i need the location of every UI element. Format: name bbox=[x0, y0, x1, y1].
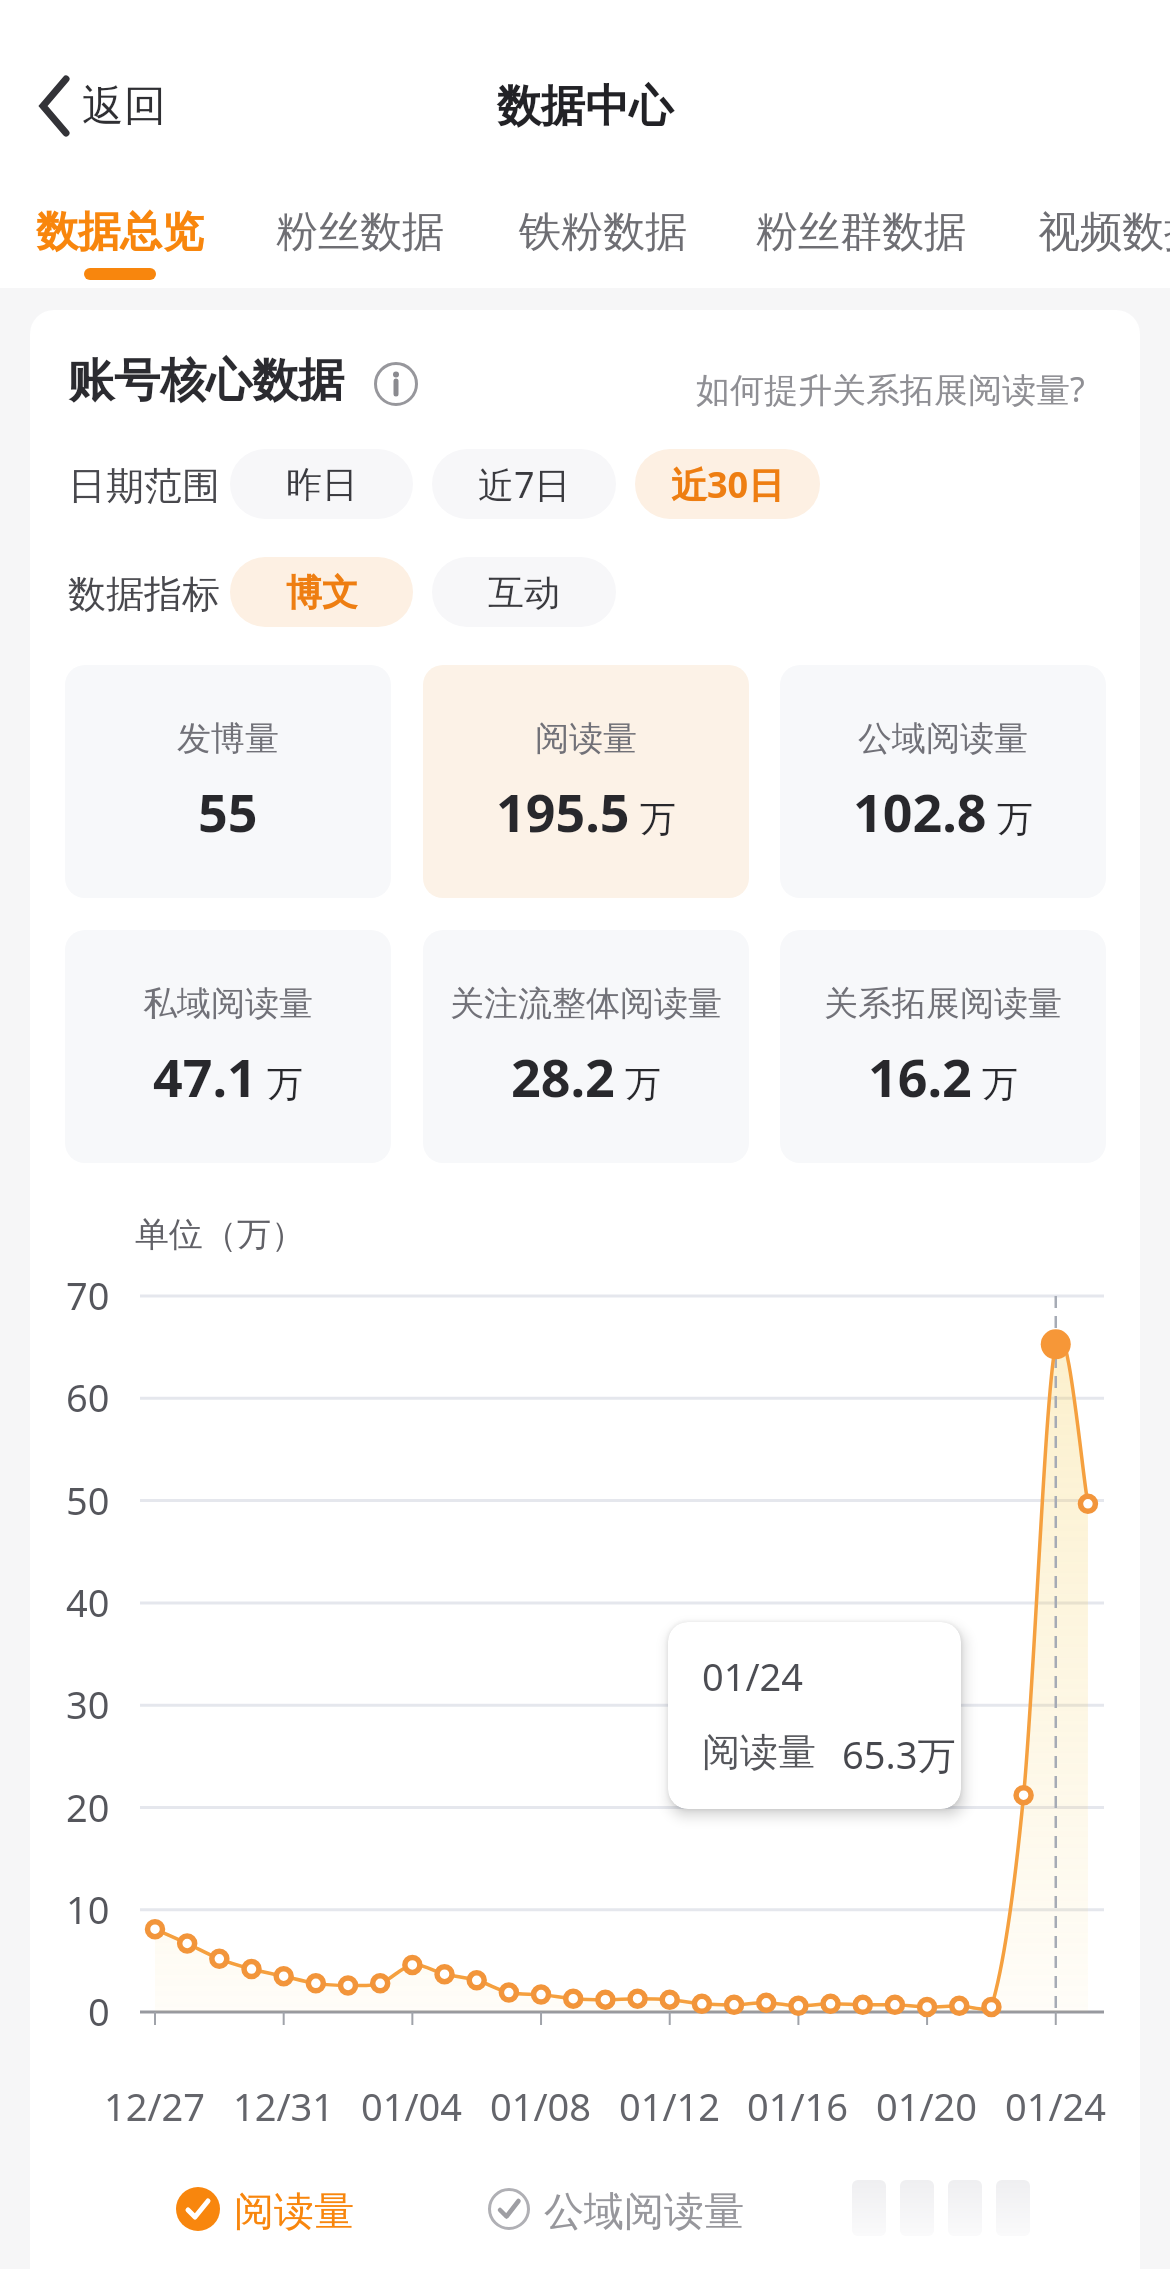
staticText: 数据中心 bbox=[497, 79, 673, 134]
staticText: 昨日 bbox=[286, 462, 358, 507]
staticText: 万 bbox=[625, 1061, 661, 1106]
button[interactable]: 发博量 bbox=[65, 665, 391, 898]
staticText: 0 bbox=[88, 1985, 110, 2037]
staticText: 30 bbox=[66, 1678, 110, 1730]
staticText: 55 bbox=[198, 776, 258, 847]
staticText: 47.1 bbox=[153, 1041, 257, 1112]
button[interactable]: 近7日 bbox=[432, 449, 616, 519]
staticText: 50 bbox=[66, 1474, 110, 1526]
staticText: 单位（万） bbox=[135, 1213, 305, 1256]
staticText: 公域阅读量 bbox=[544, 2186, 744, 2232]
staticText: 16.2 bbox=[868, 1041, 972, 1112]
staticText: 01/24 bbox=[1005, 2080, 1107, 2132]
button[interactable]: 昨日 bbox=[230, 449, 413, 519]
button[interactable]: 铁粉数据 bbox=[518, 196, 688, 268]
staticText: 视频数据 bbox=[1038, 206, 1170, 259]
staticText: 195.5 bbox=[496, 776, 630, 847]
button[interactable]: 公域阅读量 bbox=[488, 2186, 744, 2232]
staticText: 发博量 bbox=[177, 717, 279, 760]
button[interactable]: 如何提升关系拓展阅读量? bbox=[485, 366, 1085, 412]
staticText: 28.2 bbox=[511, 1041, 615, 1112]
staticText: 40 bbox=[66, 1576, 110, 1628]
button[interactable]: 互动 bbox=[432, 557, 616, 627]
button[interactable]: 视频数据 bbox=[1037, 196, 1170, 268]
button[interactable]: 关注流整体阅读量 bbox=[423, 930, 749, 1163]
button[interactable]: 博文 bbox=[230, 557, 413, 627]
button[interactable]: 阅读量 bbox=[423, 665, 749, 898]
staticText: 私域阅读量 bbox=[143, 982, 313, 1025]
staticText: 阅读量 bbox=[535, 717, 637, 760]
staticText: 10 bbox=[66, 1883, 110, 1935]
staticText: 阅读量 bbox=[702, 1728, 816, 1776]
staticText: 万 bbox=[982, 1061, 1018, 1106]
button[interactable]: 公域阅读量 bbox=[780, 665, 1106, 898]
staticText: 账号核心数据 bbox=[68, 352, 344, 410]
staticText: 近30日 bbox=[671, 460, 785, 509]
staticText: 粉丝群数据 bbox=[756, 206, 966, 259]
staticText: 日期范围 bbox=[68, 462, 220, 510]
staticText: 数据指标 bbox=[68, 570, 220, 618]
staticText: 互动 bbox=[488, 570, 560, 615]
staticText: 关系拓展阅读量 bbox=[824, 982, 1062, 1025]
staticText: 铁粉数据 bbox=[519, 206, 687, 259]
staticText: 12/27 bbox=[104, 2080, 206, 2132]
button[interactable]: 返回 bbox=[40, 74, 166, 138]
staticText: 12/31 bbox=[233, 2080, 335, 2132]
staticText: 01/20 bbox=[876, 2080, 978, 2132]
button[interactable]: 私域阅读量 bbox=[65, 930, 391, 1163]
staticText: 万 bbox=[997, 796, 1033, 841]
staticText: 博文 bbox=[286, 570, 358, 615]
staticText: 粉丝数据 bbox=[276, 206, 444, 259]
staticText: 01/24 bbox=[702, 1650, 804, 1702]
staticText: 01/08 bbox=[490, 2080, 592, 2132]
staticText: 返回 bbox=[82, 80, 166, 133]
button[interactable]: 粉丝群数据 bbox=[755, 196, 967, 268]
staticText: 01/04 bbox=[361, 2080, 463, 2132]
staticText: 70 bbox=[66, 1269, 110, 1321]
staticText: 公域阅读量 bbox=[858, 717, 1028, 760]
staticText: 65.3万 bbox=[842, 1728, 956, 1780]
button[interactable]: 粉丝数据 bbox=[275, 196, 445, 268]
staticText: 万 bbox=[267, 1061, 303, 1106]
staticText: 近7日 bbox=[478, 460, 571, 509]
button[interactable]: 近30日 bbox=[635, 449, 820, 519]
button[interactable]: 阅读量 bbox=[176, 2186, 354, 2232]
staticText: 数据总览 bbox=[36, 206, 204, 259]
staticText: 01/16 bbox=[747, 2080, 849, 2132]
staticText: 阅读量 bbox=[234, 2186, 354, 2232]
staticText: 20 bbox=[66, 1781, 110, 1833]
staticText: 60 bbox=[66, 1371, 110, 1423]
staticText: 如何提升关系拓展阅读量? bbox=[696, 366, 1085, 412]
button[interactable]: 关系拓展阅读量 bbox=[780, 930, 1106, 1163]
button[interactable]: 数据总览 bbox=[35, 196, 205, 268]
staticText: 关注流整体阅读量 bbox=[450, 982, 722, 1025]
staticText: 01/12 bbox=[619, 2080, 721, 2132]
staticText: 万 bbox=[640, 796, 676, 841]
staticText: 102.8 bbox=[853, 776, 987, 847]
